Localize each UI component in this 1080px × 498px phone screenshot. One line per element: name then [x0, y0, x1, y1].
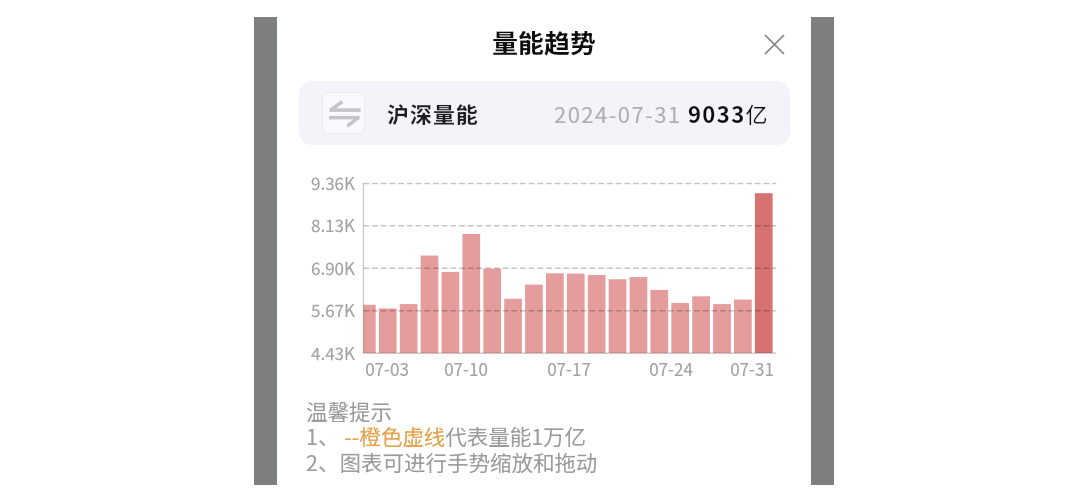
staticText: 4.43K — [290, 340, 355, 365]
staticText: 2024-07-31 9033亿 — [554, 97, 770, 129]
staticText: 6.90K — [290, 255, 355, 280]
staticText: 5.67K — [290, 297, 355, 322]
staticText: 温馨提示 — [306, 395, 393, 426]
staticText: 2、图表可进行手势缩放和拖动 — [306, 446, 598, 477]
staticText: 1、 --橙色虚线代表量能1万亿 — [306, 420, 587, 451]
staticText: 07-10 — [436, 356, 496, 381]
staticText: 沪深量能 — [387, 97, 479, 129]
staticText: 8.13K — [290, 212, 355, 237]
staticText: 量能趋势 — [492, 23, 597, 61]
staticText: 07-03 — [357, 356, 417, 381]
button[interactable]: 沪深量能 — [299, 81, 790, 145]
staticText: 07-24 — [641, 356, 701, 381]
button[interactable]: Close — [752, 22, 796, 66]
staticText: 07-17 — [539, 356, 599, 381]
staticText: 07-31 — [722, 356, 782, 381]
staticText: 9.36K — [290, 170, 355, 195]
